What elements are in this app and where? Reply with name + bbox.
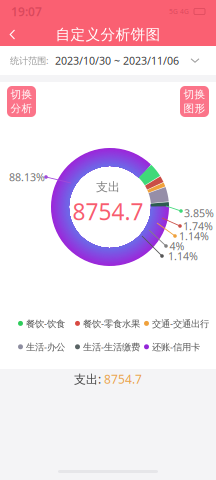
staticText: 切换: [183, 88, 205, 101]
staticText: 2023/10/30 ~ 2023/11/06: [49, 53, 179, 68]
staticText: 5G: [169, 7, 178, 16]
button[interactable]: Back: [0, 23, 25, 46]
staticText: 8754.7: [72, 196, 143, 226]
staticText: 自定义分析饼图: [55, 25, 160, 43]
staticText: 图形: [183, 102, 205, 115]
staticText: 支出: [96, 180, 120, 194]
staticText: 分析: [10, 102, 32, 115]
staticText: 还账-信用卡: [152, 341, 200, 353]
staticText: 餐饮-零食水果: [83, 317, 140, 330]
button[interactable]: 切换: [7, 86, 36, 117]
staticText: 生活-生活缴费: [83, 341, 140, 353]
staticText: 19:07: [11, 3, 42, 19]
staticText: 4%: [169, 239, 184, 253]
staticText: 4G: [178, 7, 189, 16]
staticText: 1.14%: [179, 229, 209, 243]
staticText: 8754.7: [104, 371, 142, 387]
staticText: 统计范围:: [10, 54, 49, 67]
button[interactable]: 统计范围:: [0, 46, 216, 75]
button[interactable]: 切换: [180, 86, 209, 117]
staticText: 88.13%: [9, 170, 45, 184]
staticText: 交通-交通出行: [152, 317, 209, 330]
staticText: 支出:: [74, 371, 101, 387]
staticText: 生活-办公: [26, 341, 65, 353]
staticText: 切换: [10, 88, 32, 101]
staticText: 3.85%: [184, 206, 214, 220]
staticText: 1.14%: [168, 249, 198, 263]
staticText: 1.74%: [183, 219, 213, 233]
staticText: 餐饮-饮食: [26, 317, 65, 330]
